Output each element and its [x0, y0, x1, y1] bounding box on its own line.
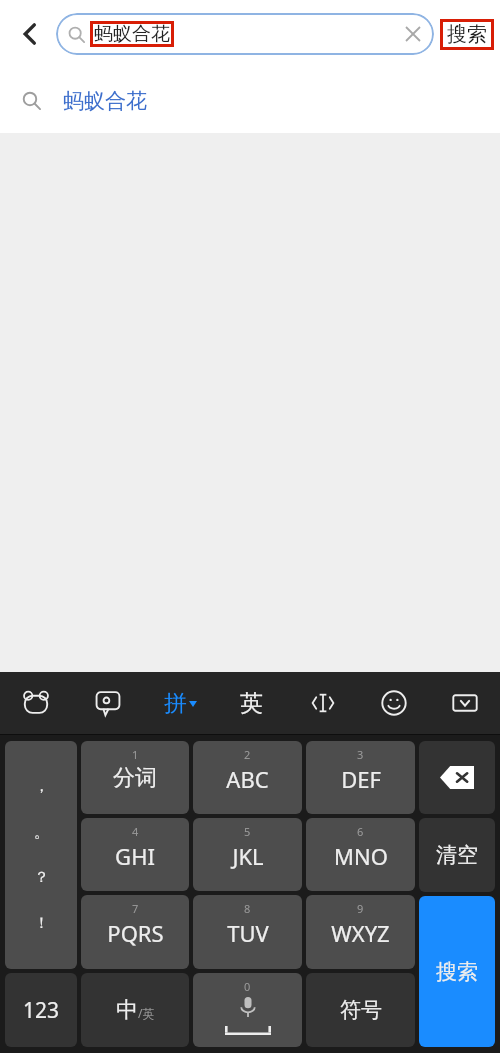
button[interactable]: Space [193, 973, 302, 1047]
staticText: 拼 [164, 689, 187, 718]
staticText: 1 [132, 747, 139, 762]
staticText: GHI [115, 841, 155, 871]
staticText: 英 [240, 689, 263, 718]
button[interactable]: 8 [193, 895, 302, 969]
staticText: MNO [334, 841, 388, 871]
staticText: 清空 [436, 842, 478, 868]
button[interactable]: 蚂蚁合花 [56, 13, 434, 55]
staticText: 搜索 [436, 959, 478, 985]
staticText: 7 [132, 901, 139, 916]
button[interactable]: Baidu input [0, 672, 72, 734]
button[interactable]: 7 [81, 895, 189, 969]
staticText: 符号 [340, 997, 382, 1023]
staticText: 2 [244, 747, 251, 762]
staticText: 分词 [113, 764, 157, 792]
button[interactable]: 拼 [144, 672, 216, 734]
button[interactable]: Clear text [400, 21, 426, 47]
button[interactable]: Hide keyboard [429, 672, 500, 734]
staticText: ABC [226, 764, 269, 794]
button[interactable]: 蚂蚁合花 [0, 68, 500, 133]
staticText: TUV [227, 918, 269, 948]
staticText: 5 [244, 824, 251, 839]
button[interactable]: 6 [306, 818, 415, 891]
button[interactable]: 英 [216, 672, 287, 734]
button[interactable]: 5 [193, 818, 302, 891]
staticText: PQRS [107, 918, 164, 948]
button[interactable]: 搜索 [419, 896, 495, 1047]
staticText: WXYZ [331, 918, 390, 948]
staticText: 0 [244, 979, 251, 994]
button[interactable]: 3 [306, 741, 415, 814]
staticText: 蚂蚁合花 [94, 22, 170, 46]
staticText: 6 [357, 824, 364, 839]
staticText: 搜索 [447, 22, 487, 47]
staticText: 9 [357, 901, 364, 916]
button[interactable]: 123 [5, 973, 77, 1047]
button[interactable]: Emoji [358, 672, 429, 734]
button[interactable]: 2 [193, 741, 302, 814]
staticText: ！ [34, 914, 49, 933]
button[interactable]: Backspace [419, 741, 495, 814]
staticText: /英 [138, 1005, 155, 1021]
staticText: DEF [341, 764, 381, 794]
button[interactable]: 中 [81, 973, 189, 1047]
staticText: ， [34, 777, 49, 796]
staticText: 4 [132, 824, 139, 839]
button[interactable]: Back [4, 8, 56, 60]
staticText: 。 [34, 823, 49, 842]
button[interactable]: Punctuation [5, 741, 77, 969]
button[interactable]: 9 [306, 895, 415, 969]
staticText: 3 [357, 747, 364, 762]
button[interactable]: 搜索 [440, 19, 494, 50]
button[interactable]: Cursor control [287, 672, 358, 734]
button[interactable]: 清空 [419, 818, 495, 892]
button[interactable]: Voice input [72, 672, 144, 734]
staticText: 8 [244, 901, 251, 916]
button[interactable]: 1 [81, 741, 189, 814]
staticText: ？ [34, 868, 49, 887]
staticText: 123 [23, 996, 60, 1025]
staticText: 中 [116, 996, 138, 1024]
button[interactable]: 符号 [306, 973, 415, 1047]
button[interactable]: 4 [81, 818, 189, 891]
staticText: 蚂蚁合花 [63, 88, 147, 114]
staticText: JKL [232, 841, 264, 871]
